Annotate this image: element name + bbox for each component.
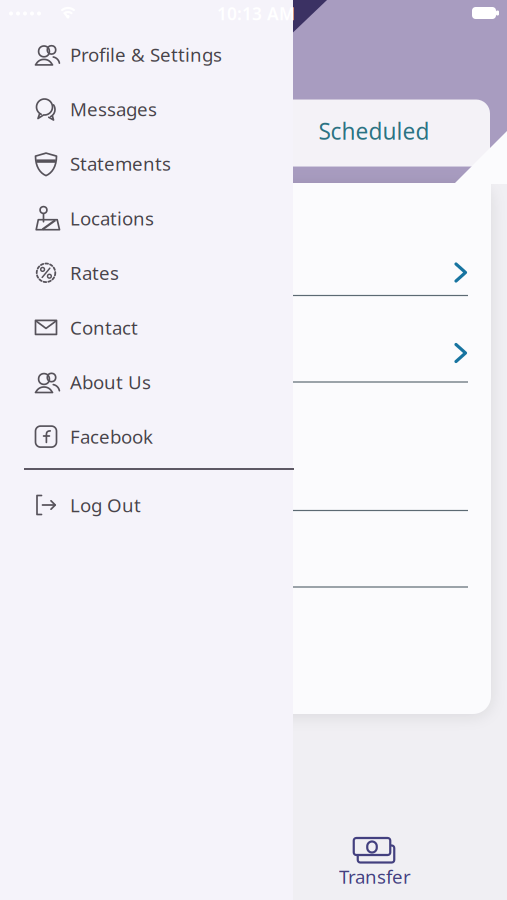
staticText: Log Out bbox=[70, 493, 141, 517]
staticText: Profile & Settings bbox=[70, 42, 222, 67]
button[interactable]: Profile & Settings bbox=[0, 27, 293, 82]
button[interactable]: Messages bbox=[0, 82, 293, 136]
button[interactable]: Choose destination account bbox=[293, 302, 491, 382]
staticText: Statements bbox=[70, 151, 171, 176]
button[interactable]: Facebook bbox=[0, 409, 293, 464]
button[interactable]: About Us bbox=[0, 355, 293, 409]
staticText: About Us bbox=[70, 370, 151, 394]
staticText: Locations bbox=[70, 206, 154, 231]
button[interactable]: Log Out bbox=[0, 478, 293, 532]
button[interactable]: Rates bbox=[0, 245, 293, 300]
button[interactable]: Transfer bbox=[319, 827, 429, 891]
button[interactable]: Scheduled bbox=[255, 97, 492, 164]
staticText: Contact bbox=[70, 315, 138, 340]
button[interactable]: Choose account bbox=[293, 215, 491, 295]
staticText: Transfer bbox=[339, 864, 411, 889]
staticText: Rates bbox=[70, 260, 119, 285]
staticText: Messages bbox=[70, 97, 157, 121]
button[interactable]: Locations bbox=[0, 191, 293, 245]
button[interactable]: Statements bbox=[0, 136, 293, 191]
staticText: 10:13 AM bbox=[217, 2, 295, 25]
staticText: Facebook bbox=[70, 424, 153, 449]
staticText: Scheduled bbox=[318, 116, 429, 146]
button[interactable]: Contact bbox=[0, 300, 293, 355]
